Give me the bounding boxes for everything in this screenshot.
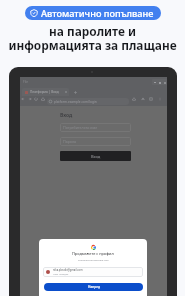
- button[interactable]: Forward: [27, 96, 33, 102]
- button[interactable]: Profile: [140, 96, 146, 102]
- button[interactable]: Extensions: [148, 96, 154, 102]
- staticText: Вход: [91, 154, 101, 159]
- staticText: Вход: [60, 112, 73, 119]
- button[interactable]: New tab: [74, 91, 77, 94]
- staticText: Напред: [88, 285, 100, 289]
- staticText: File: [23, 80, 29, 84]
- staticText: на паролите и информацията за плащане: [8, 23, 177, 53]
- button[interactable]: Menu: [157, 96, 163, 102]
- staticText: Продължете с профил: [72, 251, 114, 256]
- button[interactable]: Reload: [33, 96, 39, 102]
- button[interactable]: Minimize: [152, 80, 157, 85]
- button[interactable]: Bookmark: [131, 96, 137, 102]
- button[interactable]: Платформа | Вход: [22, 88, 69, 96]
- button[interactable]: Home: [40, 96, 46, 102]
- staticText: platform.example.com/login: [54, 100, 97, 104]
- button[interactable]: Автоматично попълване: [25, 6, 161, 20]
- button[interactable]: Back: [20, 96, 26, 102]
- button[interactable]: nika.plovdiv@gmail.com: [43, 267, 143, 277]
- staticText: Парола: [63, 139, 77, 144]
- staticText: Потребителско име: [63, 125, 98, 130]
- button[interactable]: Потребителско име: [60, 123, 131, 132]
- button[interactable]: platform.example.com/login: [47, 98, 129, 105]
- button[interactable]: Maximize: [157, 80, 162, 85]
- staticText: nika.plovdiv@gmail.com: [53, 268, 83, 272]
- staticText: yourplatform.example.com: [78, 258, 109, 261]
- staticText: Автоматично попълване: [41, 7, 154, 20]
- button[interactable]: Вход: [60, 151, 131, 161]
- staticText: Платформа | Вход: [30, 90, 65, 94]
- button[interactable]: Close window: [162, 80, 167, 85]
- button[interactable]: Напред: [44, 283, 143, 291]
- button[interactable]: Парола: [60, 137, 131, 146]
- staticText: Ника Пловдив: [53, 273, 69, 276]
